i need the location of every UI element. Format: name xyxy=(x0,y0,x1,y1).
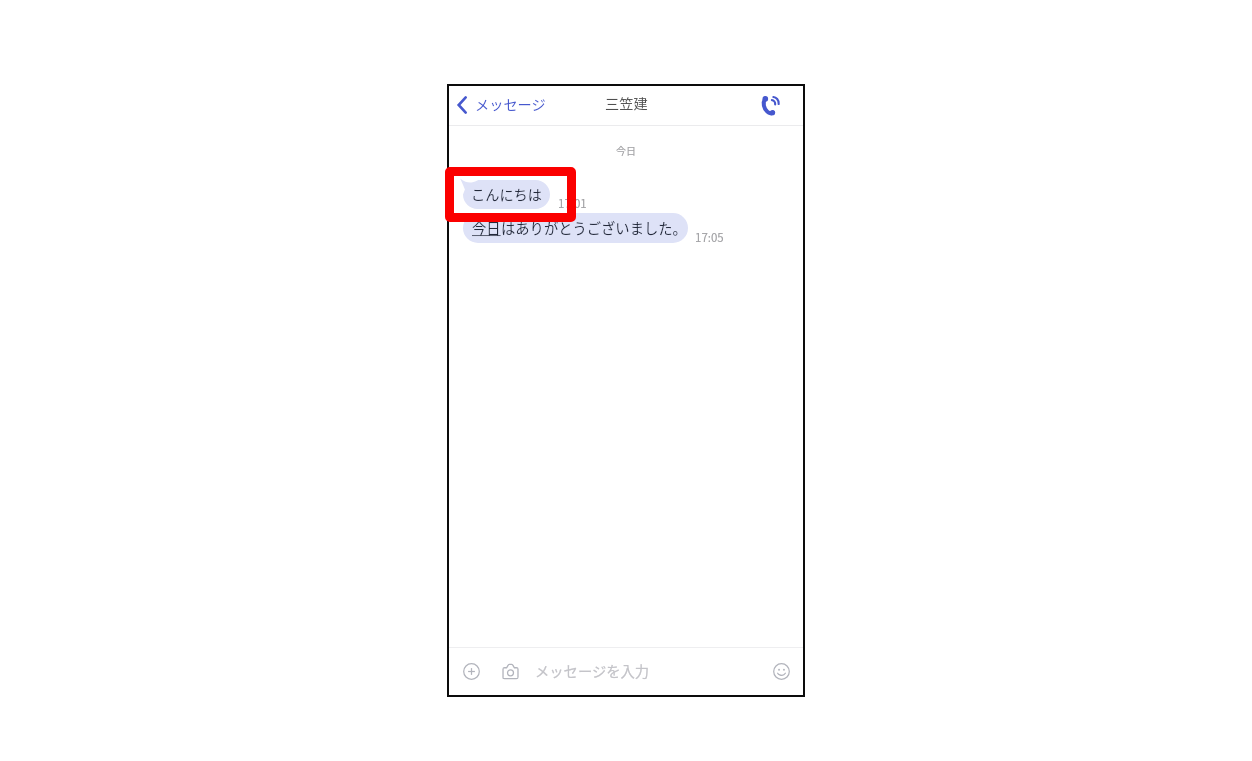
staticText: 三笠建 xyxy=(605,93,648,114)
button[interactable]: 今日 xyxy=(463,213,688,243)
staticText: 今日 xyxy=(616,143,636,157)
staticText: 17:01 xyxy=(558,195,587,212)
staticText: 17:05 xyxy=(695,229,724,246)
staticText: こんにちは xyxy=(471,184,542,205)
staticText: メッセージ xyxy=(475,94,546,115)
button[interactable]: Camera xyxy=(499,660,521,682)
staticText: はありがとうございました。 xyxy=(501,217,687,238)
staticText: メッセージを入力 xyxy=(535,660,650,681)
staticText: 今日 xyxy=(472,217,501,238)
button[interactable]: Add attachment xyxy=(460,660,482,682)
button[interactable]: こんにちは xyxy=(463,180,550,209)
button[interactable]: メッセージ xyxy=(455,89,548,120)
button[interactable]: Call xyxy=(757,92,783,118)
button[interactable]: Emoji xyxy=(770,660,792,682)
